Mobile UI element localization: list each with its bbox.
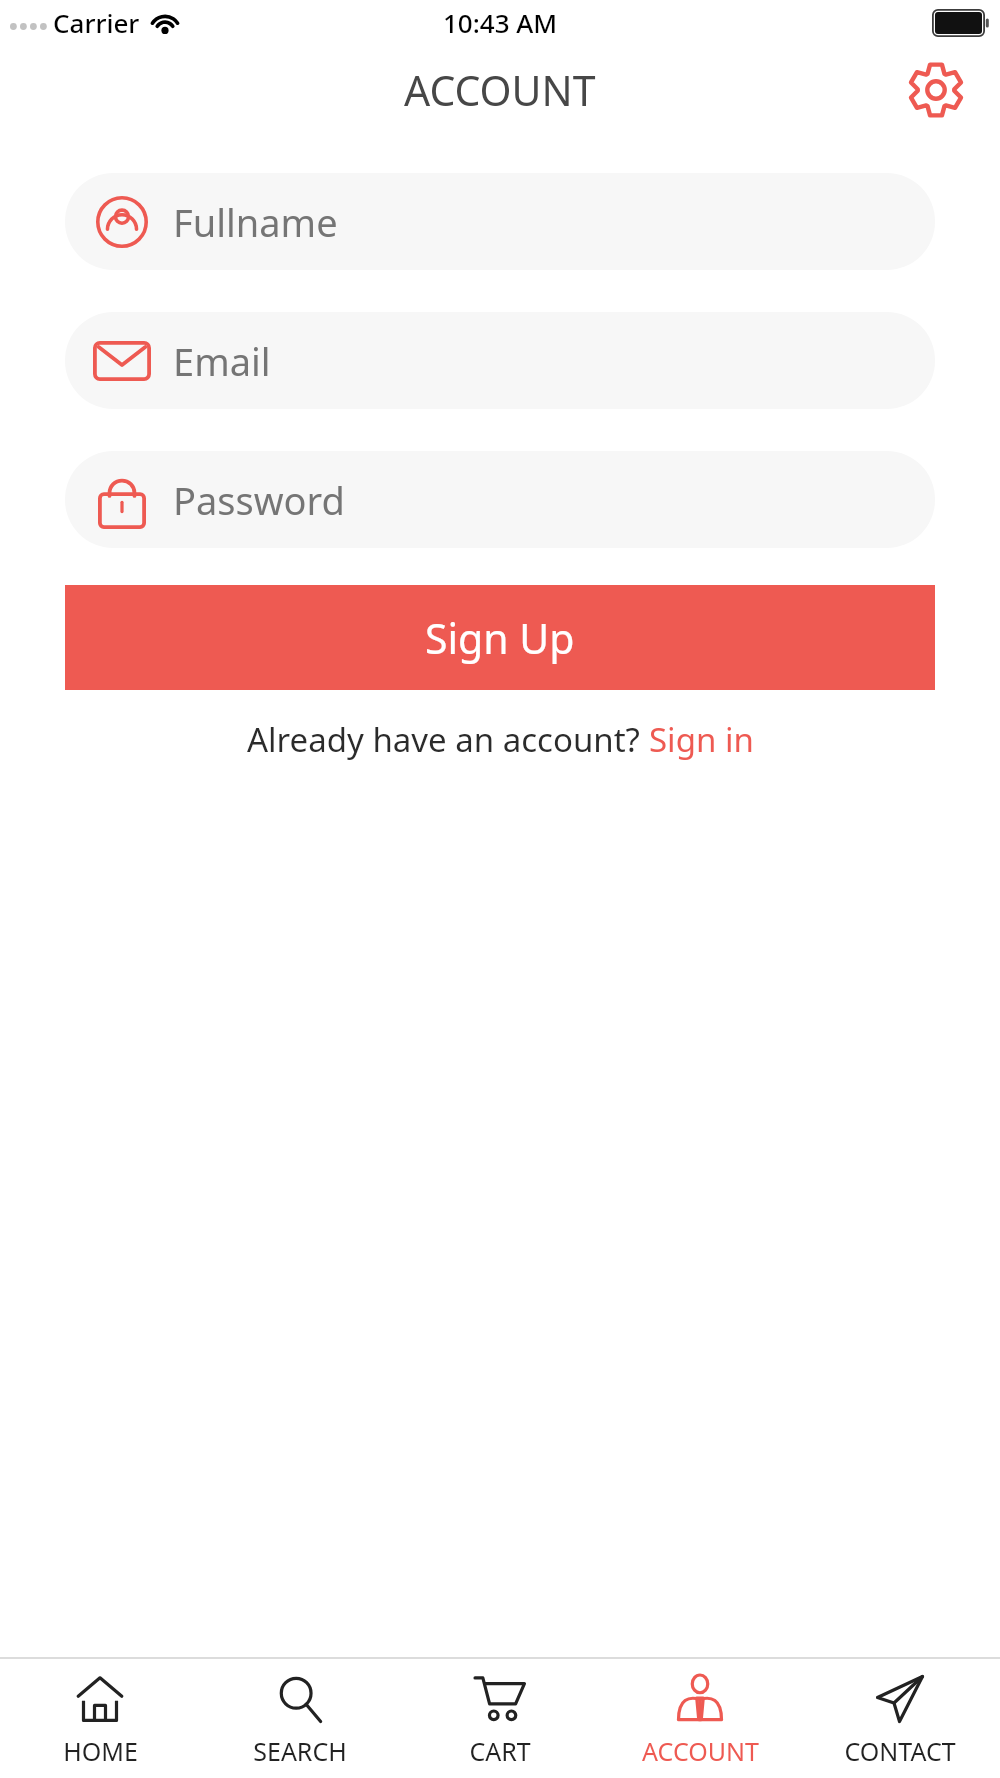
staticText: Already have an account? bbox=[247, 717, 649, 762]
button[interactable]: CONTACT bbox=[800, 1659, 1000, 1778]
staticText: Email bbox=[173, 335, 271, 387]
staticText: Sign Up bbox=[425, 610, 575, 666]
staticText: ACCOUNT bbox=[642, 1734, 759, 1768]
button[interactable]: Sign Up bbox=[65, 585, 935, 690]
staticText: Carrier bbox=[53, 5, 140, 40]
staticText: Sign in bbox=[649, 717, 754, 762]
staticText: 10:43 AM bbox=[443, 5, 558, 40]
staticText: ACCOUNT bbox=[404, 62, 596, 118]
button[interactable]: Fullname bbox=[65, 173, 935, 270]
button[interactable]: SEARCH bbox=[200, 1659, 400, 1778]
staticText: HOME bbox=[63, 1734, 138, 1768]
button[interactable]: CART bbox=[400, 1659, 600, 1778]
staticText: Password bbox=[173, 474, 345, 526]
staticText: Fullname bbox=[173, 196, 338, 248]
button[interactable]: Password bbox=[65, 451, 935, 548]
button[interactable]: Sign in bbox=[649, 717, 754, 762]
button[interactable]: ACCOUNT bbox=[600, 1659, 800, 1778]
button[interactable]: Settings bbox=[900, 54, 972, 126]
staticText: SEARCH bbox=[253, 1734, 347, 1768]
button[interactable]: HOME bbox=[0, 1659, 200, 1778]
staticText: CART bbox=[469, 1734, 531, 1768]
button[interactable]: Email bbox=[65, 312, 935, 409]
staticText: CONTACT bbox=[844, 1734, 956, 1768]
